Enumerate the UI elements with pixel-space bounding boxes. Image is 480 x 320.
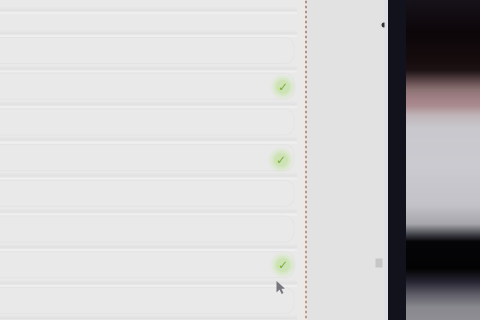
staticText: ✓ [276,153,286,167]
staticText: ✓ [278,80,288,94]
staticText: ✓ [278,258,288,272]
